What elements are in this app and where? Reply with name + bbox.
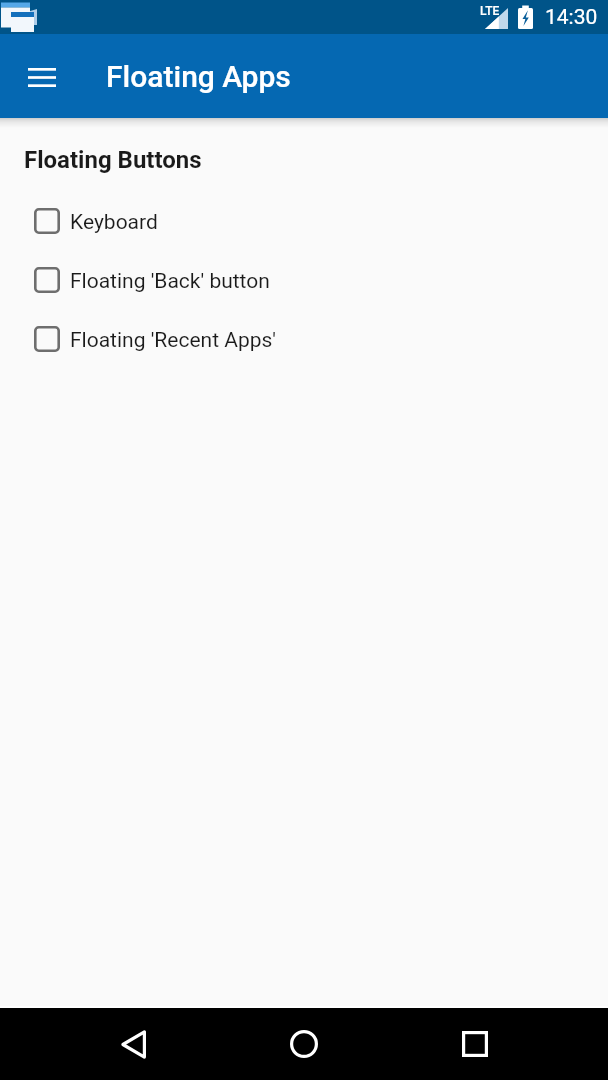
button[interactable]: Floating 'Recent Apps': [0, 309, 608, 368]
button[interactable]: Keyboard: [0, 191, 608, 250]
staticText: Floating Apps: [106, 59, 291, 94]
button[interactable]: Open navigation menu: [14, 48, 70, 104]
staticText: Floating Buttons: [24, 146, 202, 174]
button[interactable]: Home: [268, 1008, 340, 1080]
staticText: 14:30: [545, 5, 598, 30]
staticText: LTE: [480, 4, 500, 18]
button[interactable]: Floating 'Back' button: [0, 250, 608, 309]
staticText: Floating 'Back' button: [70, 269, 270, 294]
button[interactable]: Recent apps: [439, 1008, 511, 1080]
staticText: Floating 'Recent Apps': [70, 328, 277, 353]
button[interactable]: Back: [97, 1008, 169, 1080]
staticText: Keyboard: [70, 210, 158, 235]
